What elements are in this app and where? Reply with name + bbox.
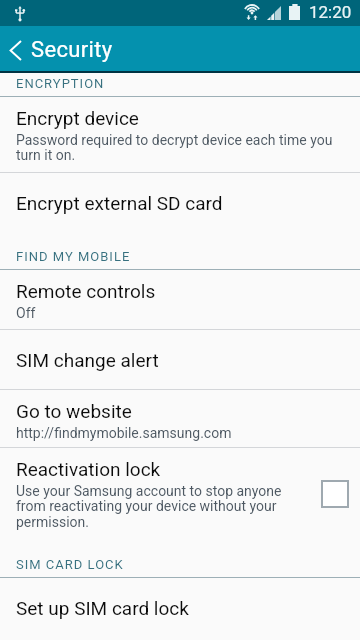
staticText: Go to website bbox=[16, 400, 132, 422]
button[interactable]: Encrypt device bbox=[0, 97, 360, 173]
staticText: SIM change alert bbox=[16, 349, 159, 371]
staticText: ENCRYPTION bbox=[16, 76, 105, 91]
staticText: Encrypt external SD card bbox=[16, 192, 223, 214]
staticText: Remote controls bbox=[16, 280, 156, 302]
button[interactable]: Remote controls bbox=[0, 270, 360, 330]
staticText: Use your Samsung account to stop anyone … bbox=[16, 483, 300, 531]
staticText: Password required to decrypt device each… bbox=[16, 132, 344, 164]
staticText: Reactivation lock bbox=[16, 458, 161, 480]
staticText: SIM CARD LOCK bbox=[16, 557, 124, 572]
button[interactable]: Go to website bbox=[0, 390, 360, 448]
button[interactable]: Set up SIM card lock bbox=[0, 578, 360, 637]
staticText: Set up SIM card lock bbox=[16, 597, 189, 619]
button[interactable]: Reactivation lock bbox=[0, 448, 360, 541]
staticText: 12:20 bbox=[309, 2, 352, 22]
staticText: Off bbox=[16, 305, 36, 321]
staticText: FIND MY MOBILE bbox=[16, 249, 131, 264]
button[interactable]: SIM change alert bbox=[0, 330, 360, 390]
staticText: http://findmymobile.samsung.com bbox=[16, 425, 232, 441]
button[interactable]: Navigate up bbox=[0, 26, 31, 71]
staticText: Encrypt device bbox=[16, 107, 139, 129]
button[interactable]: Encrypt external SD card bbox=[0, 173, 360, 233]
staticText: Security bbox=[31, 37, 113, 63]
